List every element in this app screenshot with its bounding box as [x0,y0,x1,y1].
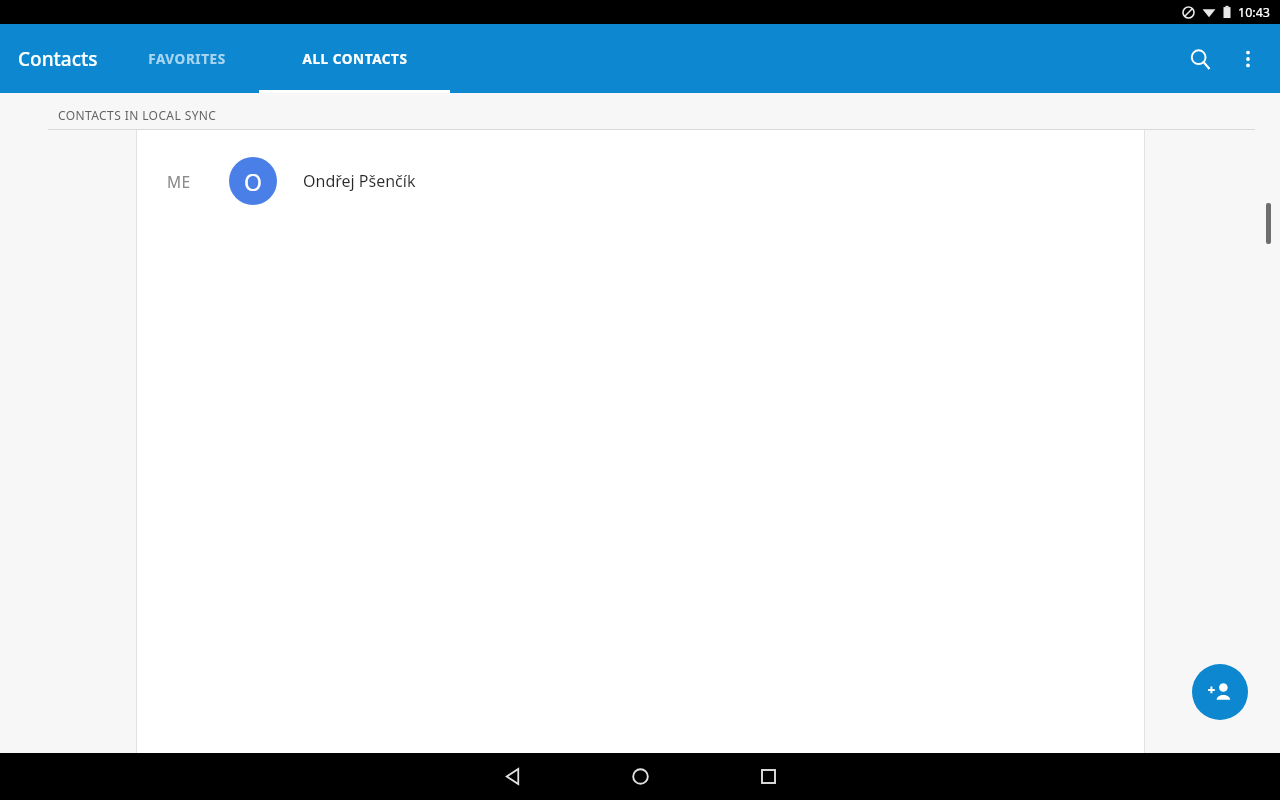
staticText: ALL CONTACTS [302,50,408,68]
button[interactable]: More options [1224,35,1272,83]
staticText: ME [167,171,191,192]
button[interactable]: Recent apps [744,753,792,800]
button[interactable]: FAVORITES [114,24,259,93]
staticText: Ondřej Pšenčík [303,170,416,192]
button[interactable]: Home [616,753,664,800]
button[interactable]: Back [489,753,537,800]
button[interactable]: ALL CONTACTS [259,24,450,93]
button[interactable]: ME [137,141,1144,221]
staticText: FAVORITES [148,50,226,68]
staticText: O [244,166,262,197]
staticText: CONTACTS IN LOCAL SYNC [58,107,217,123]
button[interactable]: Search [1176,35,1224,83]
staticText: Contacts [18,46,98,72]
button[interactable]: Add contact [1192,664,1248,720]
staticText: 10:43 [1238,4,1270,21]
